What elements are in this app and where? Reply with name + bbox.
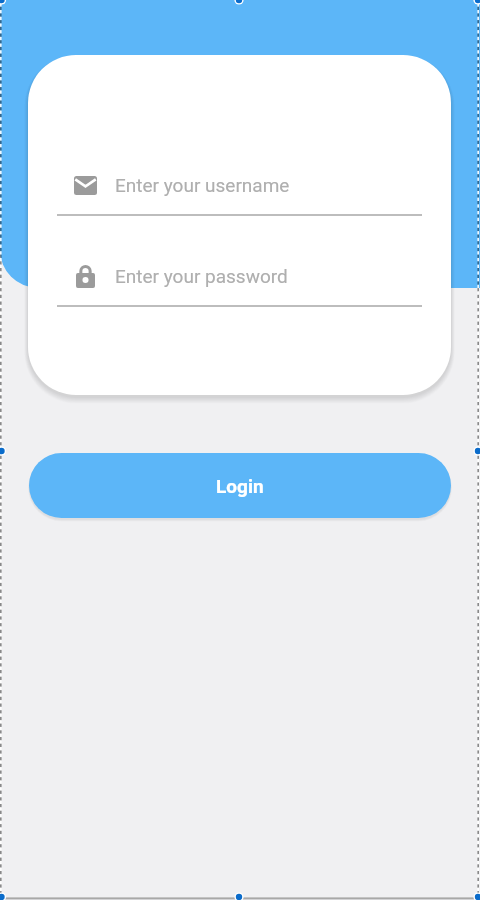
button[interactable]: Enter your username (57, 173, 422, 216)
staticText: Enter your password (115, 265, 288, 287)
button[interactable]: Login (29, 453, 451, 518)
staticText: Enter your username (115, 174, 290, 196)
staticText: Login (216, 475, 264, 497)
button[interactable]: Enter your password (57, 264, 422, 307)
